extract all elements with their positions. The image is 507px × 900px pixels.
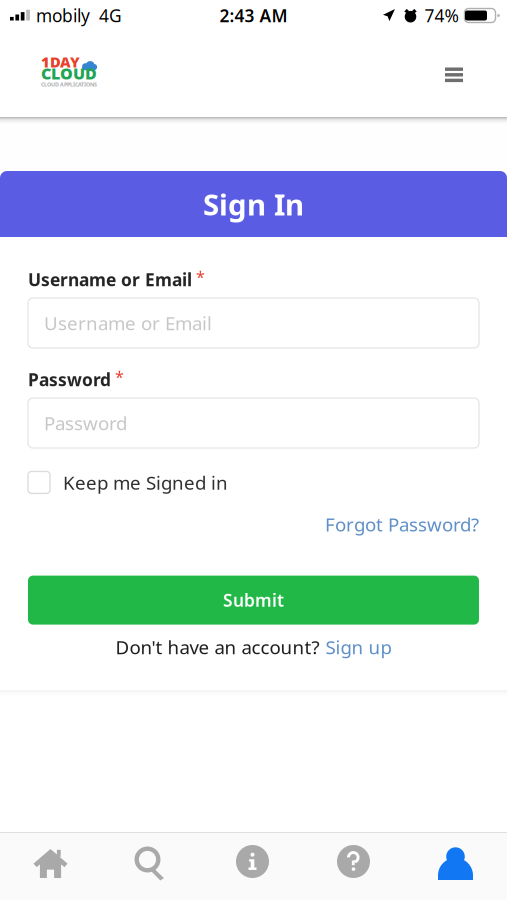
staticText: mobily: [36, 4, 90, 27]
button[interactable]: Search: [101, 833, 202, 900]
staticText: Password: [28, 368, 111, 391]
button[interactable]: Account: [404, 833, 507, 900]
button[interactable]: Home: [0, 833, 101, 900]
staticText: Keep me Signed in: [63, 470, 228, 495]
button[interactable]: Submit: [28, 576, 479, 625]
staticText: Username or Email: [28, 268, 192, 291]
button[interactable]: Help: [303, 833, 404, 900]
button[interactable]: Password: [28, 398, 479, 448]
staticText: *: [196, 266, 205, 287]
staticText: Don't have an account?: [115, 635, 319, 659]
staticText: Sign up: [325, 635, 391, 659]
button[interactable]: Menu: [429, 51, 479, 98]
button[interactable]: Info: [202, 833, 303, 900]
button[interactable]: Keep me Signed in: [28, 470, 479, 495]
staticText: Password: [44, 411, 127, 435]
staticText: Username or Email: [44, 311, 212, 335]
staticText: CLOUD APPLICATIONS: [41, 81, 97, 88]
staticText: 1DAY: [41, 52, 80, 72]
staticText: Forgot Password?: [325, 512, 479, 537]
button[interactable]: Username or Email: [28, 298, 479, 348]
staticText: 2:43 AM: [219, 4, 287, 27]
staticText: Submit: [223, 589, 284, 612]
staticText: CLOUD: [41, 63, 97, 84]
staticText: 4G: [99, 4, 122, 27]
staticText: *: [115, 366, 124, 387]
button[interactable]: Forgot Password?: [325, 512, 479, 537]
button[interactable]: Sign up: [325, 635, 391, 659]
staticText: 74%: [424, 4, 458, 27]
staticText: Sign In: [203, 184, 304, 223]
